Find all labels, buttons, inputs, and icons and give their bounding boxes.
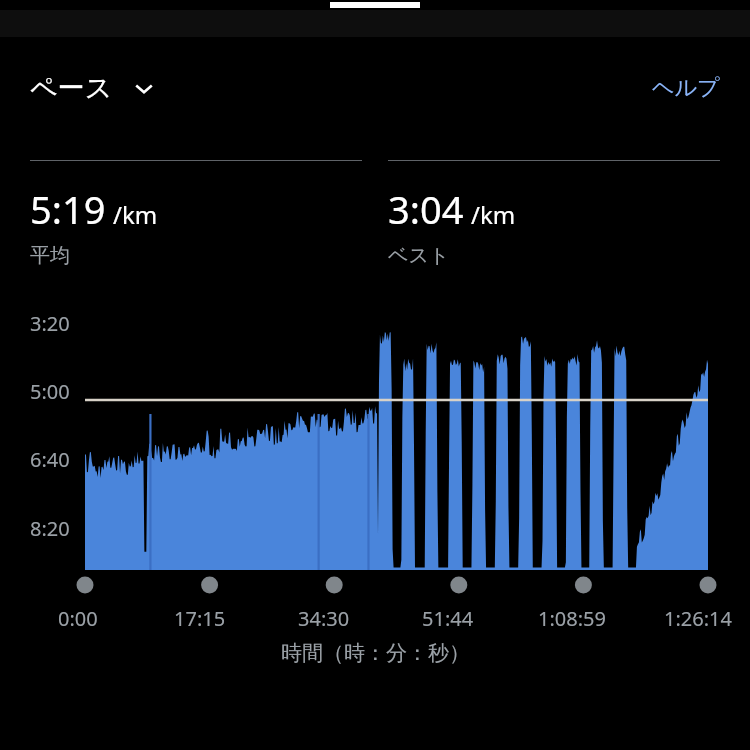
staticText: 0:00 xyxy=(58,605,98,632)
button[interactable]: ヘルプ xyxy=(652,74,720,102)
staticText: 1:26:14 xyxy=(664,605,732,632)
staticText: 時間（時：分：秒） xyxy=(281,640,470,666)
staticText: 8:20 xyxy=(30,515,70,542)
staticText: 5:00 xyxy=(30,378,70,405)
button[interactable]: 5:19 xyxy=(30,160,362,268)
staticText: /km xyxy=(113,198,158,231)
staticText: 平均 xyxy=(30,243,70,268)
staticText: 34:30 xyxy=(298,605,350,632)
staticText: 6:40 xyxy=(30,446,70,473)
staticText: 3:20 xyxy=(30,310,70,337)
staticText: 5:19 xyxy=(30,183,106,235)
staticText: ヘルプ xyxy=(652,74,720,102)
staticText: ベスト xyxy=(388,243,450,268)
staticText: /km xyxy=(471,198,516,231)
staticText: 1:08:59 xyxy=(538,605,606,632)
staticText: 3:04 xyxy=(388,183,464,235)
button[interactable]: ペース xyxy=(30,71,157,105)
button[interactable]: 3:04 xyxy=(388,160,720,268)
staticText: 51:44 xyxy=(422,605,474,632)
staticText: ペース xyxy=(30,71,113,105)
staticText: 17:15 xyxy=(174,605,226,632)
